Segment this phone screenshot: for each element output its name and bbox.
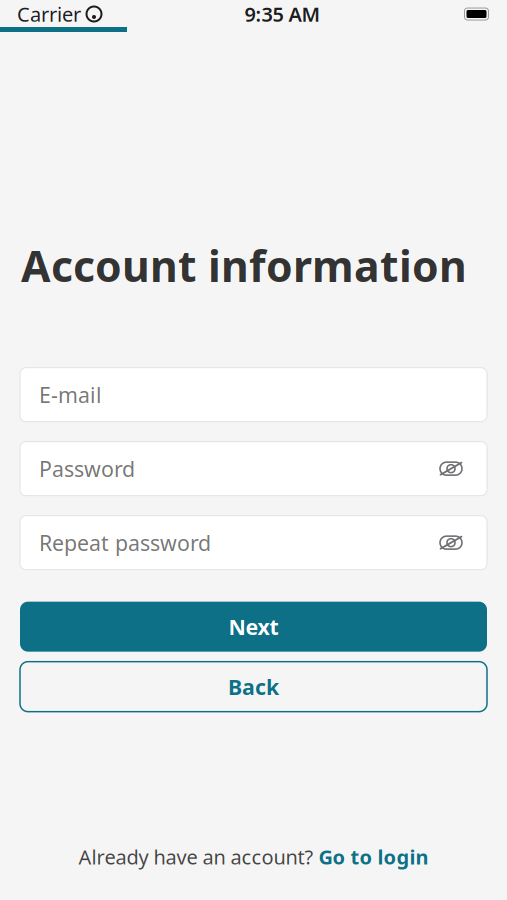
- button[interactable]: Back: [20, 662, 487, 712]
- button[interactable]: Go to login: [318, 843, 428, 870]
- staticText: Carrier: [17, 1, 81, 27]
- staticText: Account information: [21, 237, 467, 294]
- button[interactable]: Show password: [434, 452, 468, 486]
- staticText: 9:35 AM: [244, 1, 320, 27]
- staticText: Repeat password: [39, 528, 211, 557]
- staticText: Password: [39, 454, 135, 483]
- staticText: E-mail: [39, 380, 102, 409]
- staticText: Already have an account?: [78, 843, 318, 870]
- button[interactable]: Show repeat password: [434, 526, 468, 560]
- staticText: Next: [228, 612, 278, 641]
- button[interactable]: Next: [20, 602, 487, 652]
- staticText: Go to login: [318, 843, 428, 870]
- staticText: Back: [228, 672, 279, 701]
